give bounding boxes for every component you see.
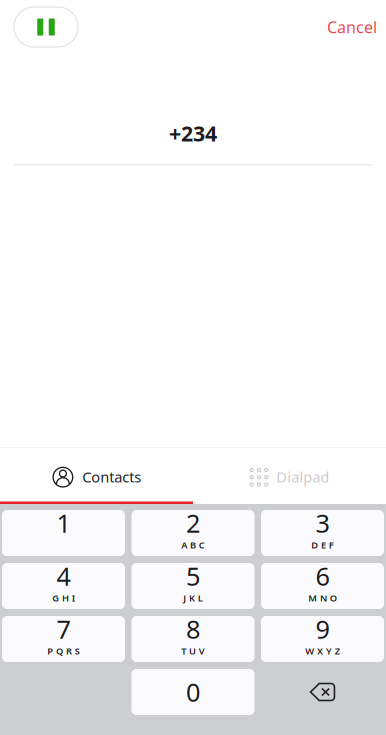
staticText: +234 xyxy=(169,119,217,147)
button[interactable]: 4 xyxy=(2,563,125,609)
staticText: 5 xyxy=(186,559,200,593)
staticText: Cancel xyxy=(327,16,377,38)
button[interactable]: 0 xyxy=(131,669,254,715)
staticText: Contacts xyxy=(82,467,141,486)
staticText: 2 xyxy=(186,506,200,540)
staticText: ABC xyxy=(181,539,205,551)
staticText: GHI xyxy=(52,592,75,604)
staticText: 4 xyxy=(56,559,70,593)
staticText: PQRS xyxy=(47,645,80,657)
staticText: 9 xyxy=(315,612,329,646)
staticText: DEF xyxy=(311,539,334,551)
button[interactable]: 8 xyxy=(131,616,254,662)
staticText: 3 xyxy=(315,506,329,540)
button[interactable]: Dialpad xyxy=(193,448,386,501)
staticText: WXYZ xyxy=(305,645,340,657)
staticText: 6 xyxy=(315,559,329,593)
button[interactable]: Delete xyxy=(261,669,384,715)
button[interactable]: Contacts xyxy=(0,448,193,501)
button[interactable]: Cancel xyxy=(327,16,378,38)
button[interactable]: 2 xyxy=(131,510,254,556)
staticText: MNO xyxy=(308,592,337,604)
staticText: 0 xyxy=(186,675,200,709)
staticText: 7 xyxy=(56,612,70,646)
staticText: TUV xyxy=(181,645,205,657)
button[interactable]: Pause xyxy=(14,7,78,47)
button[interactable]: 7 xyxy=(2,616,125,662)
staticText: 1 xyxy=(56,506,70,540)
staticText: 8 xyxy=(186,612,200,646)
button[interactable]: 3 xyxy=(261,510,384,556)
button[interactable]: 5 xyxy=(131,563,254,609)
staticText: JKL xyxy=(183,592,203,604)
button[interactable]: 6 xyxy=(261,563,384,609)
button[interactable]: 1 xyxy=(2,510,125,556)
staticText: Dialpad xyxy=(276,467,329,486)
button[interactable]: 9 xyxy=(261,616,384,662)
